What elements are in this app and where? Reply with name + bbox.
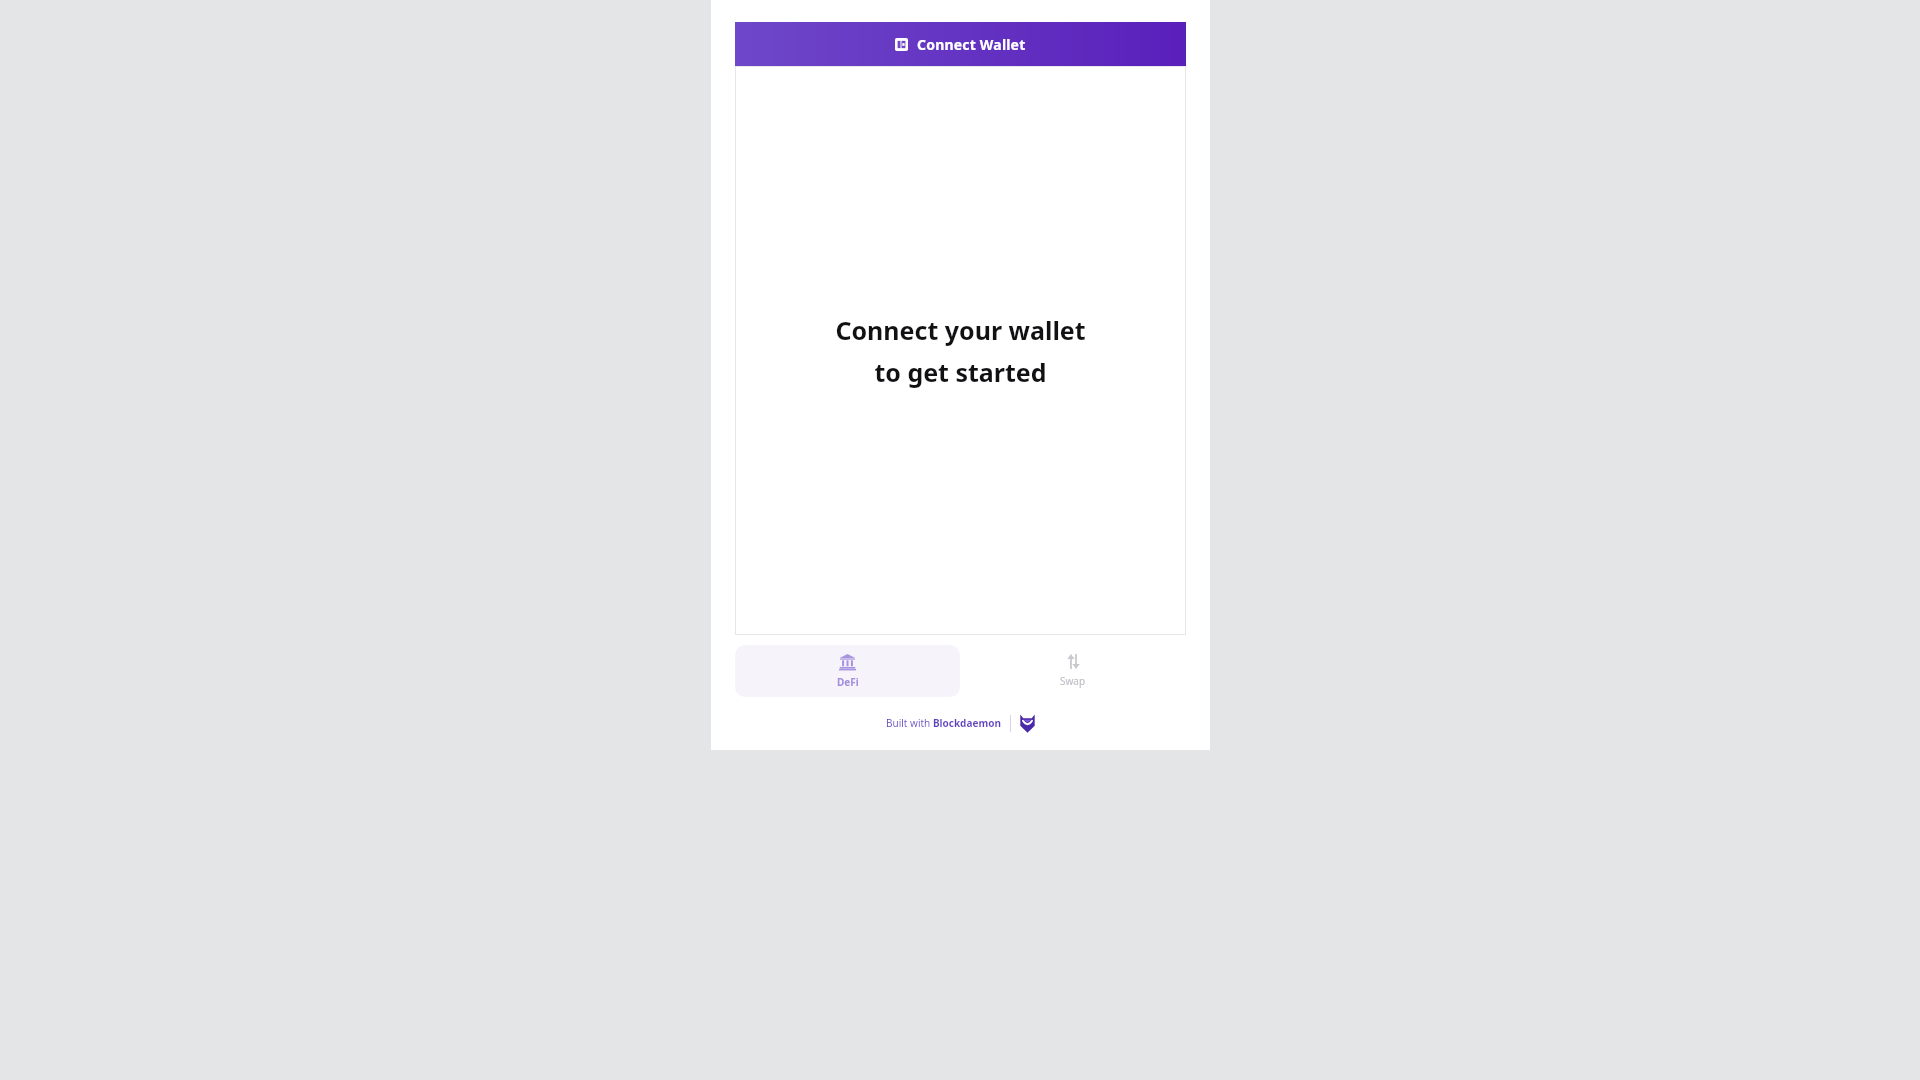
other: Swap <box>1066 654 1081 669</box>
other: Blockdaemon logo <box>1020 714 1035 733</box>
other: Wallet <box>895 38 908 51</box>
staticText: Connect Wallet <box>917 35 1026 54</box>
button[interactable]: Swap <box>960 645 1186 697</box>
staticText: Swap <box>1060 674 1086 688</box>
staticText: DeFi <box>837 675 859 689</box>
button[interactable]: DeFi <box>735 645 960 697</box>
staticText: Built with Blockdaemon <box>886 716 1001 730</box>
button[interactable]: Wallet <box>735 22 1186 66</box>
other: DeFi <box>839 653 856 670</box>
staticText: Connect your wallet <box>835 313 1086 347</box>
staticText: to get started <box>874 355 1047 389</box>
